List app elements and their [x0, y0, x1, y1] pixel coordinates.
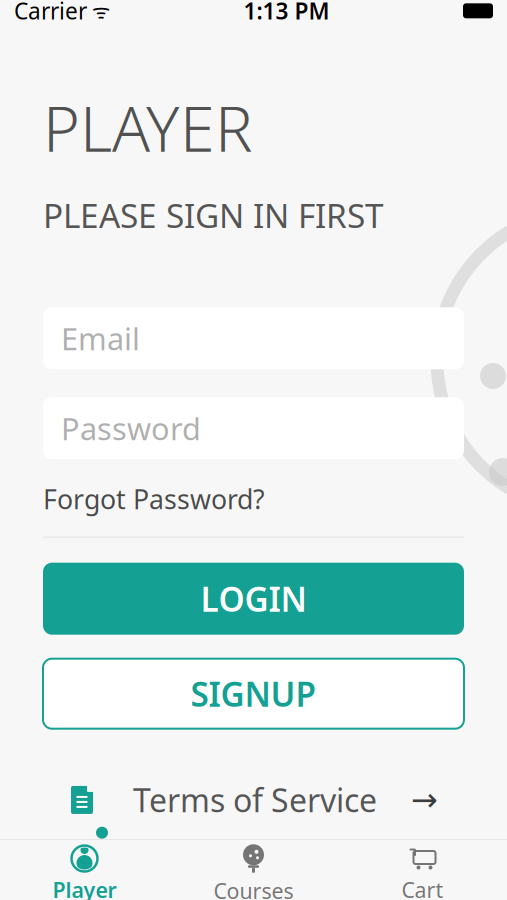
button[interactable]: Forgot Password?	[43, 459, 464, 525]
button[interactable]: LOGIN	[43, 563, 464, 635]
staticText: PLEASE SIGN IN FIRST	[43, 193, 384, 237]
staticText: Forgot Password?	[43, 481, 265, 517]
staticText: PLAYER	[43, 86, 253, 169]
staticText: Email	[61, 318, 140, 359]
staticText: Carrier	[14, 0, 87, 26]
button[interactable]: Cart	[338, 838, 507, 900]
staticText: Terms of Service	[133, 779, 377, 821]
staticText: LOGIN	[200, 577, 306, 621]
staticText: →	[411, 782, 438, 818]
button[interactable]: SIGNUP	[43, 659, 464, 729]
button[interactable]: Player	[0, 838, 169, 900]
button[interactable]: Terms of Service	[69, 729, 438, 831]
staticText: Cart	[401, 875, 443, 900]
staticText: 1:13 PM	[243, 0, 329, 26]
staticText: Player	[52, 875, 116, 900]
staticText: SIGNUP	[190, 672, 316, 716]
staticText: ᯤ	[87, 0, 110, 24]
staticText: Password	[61, 408, 201, 449]
staticText: Courses	[213, 876, 293, 900]
button[interactable]: Courses	[169, 837, 338, 900]
